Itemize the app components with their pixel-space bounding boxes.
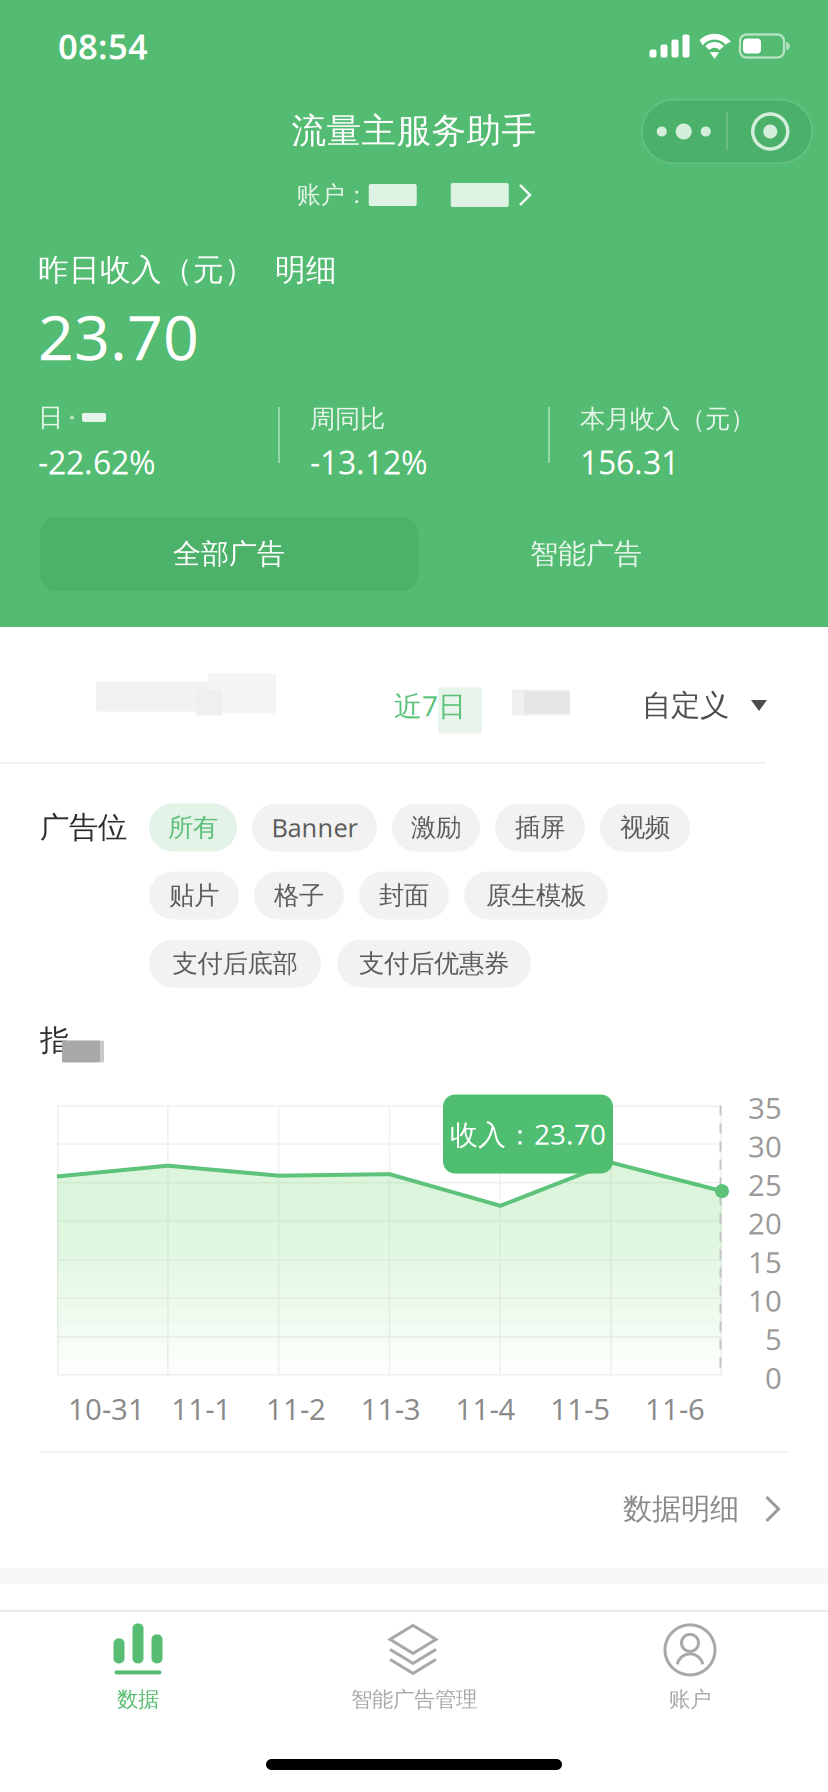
staticText: -22.62%	[38, 441, 156, 483]
button[interactable]: Banner	[252, 803, 377, 851]
staticText: 11-3	[361, 1389, 421, 1428]
staticText: 数据	[117, 1686, 159, 1713]
staticText: 数据明细	[623, 1491, 739, 1527]
staticText: Banner	[271, 811, 357, 844]
staticText: 35	[748, 1088, 782, 1127]
button[interactable]: 全部广告	[40, 517, 418, 591]
button[interactable]: 自定义	[642, 683, 767, 727]
button[interactable]: 数据	[0, 1612, 276, 1724]
staticText: 视频	[620, 812, 670, 843]
staticText: 本月收入（元）	[580, 403, 755, 434]
button[interactable]: 贴片	[149, 871, 239, 919]
staticText: 支付后优惠券	[359, 948, 509, 979]
button[interactable]: 数据明细	[0, 1453, 828, 1565]
button[interactable]: 智能广告管理	[276, 1612, 552, 1724]
button[interactable]: 所有	[149, 803, 237, 851]
staticText: 自定义	[642, 687, 729, 723]
button[interactable]: 智能广告	[418, 517, 754, 591]
staticText: 15	[748, 1242, 782, 1281]
staticText: 收入：23.70	[450, 1115, 606, 1153]
staticText: 11-1	[171, 1389, 231, 1428]
button[interactable]: 插屏	[495, 803, 585, 851]
staticText: 智能广告管理	[351, 1686, 477, 1713]
staticText: 11-4	[455, 1389, 515, 1428]
staticText: 智能广告	[530, 537, 642, 571]
button[interactable]: 原生模板	[464, 871, 608, 919]
staticText: 所有	[168, 812, 218, 843]
staticText: 08:54	[58, 23, 148, 69]
button[interactable]: More options	[641, 100, 726, 163]
button[interactable]: Close mini program	[728, 100, 813, 163]
staticText: 10-31	[68, 1389, 145, 1428]
staticText: 10	[748, 1281, 782, 1320]
staticText: 支付后底部	[172, 948, 297, 979]
button[interactable]: 支付后优惠券	[337, 939, 531, 987]
staticText: 11-6	[645, 1389, 705, 1428]
staticText: 20	[748, 1204, 782, 1243]
staticText: 贴片	[169, 880, 219, 911]
staticText: -13.12%	[310, 441, 428, 483]
button[interactable]: 近7日	[394, 683, 466, 727]
staticText: 原生模板	[486, 880, 586, 911]
button[interactable]: 激励	[392, 803, 480, 851]
staticText: 日	[38, 402, 63, 433]
staticText: 30	[748, 1127, 782, 1166]
staticText: 账户：	[297, 180, 369, 210]
staticText: 全部广告	[173, 537, 285, 571]
staticText: 周同比	[310, 403, 385, 434]
button[interactable]: 封面	[359, 871, 449, 919]
button[interactable]: 支付后底部	[149, 939, 321, 987]
staticText: 11-5	[550, 1389, 610, 1428]
button[interactable]: 格子	[254, 871, 344, 919]
staticText: 明细	[275, 251, 337, 289]
staticText: 格子	[274, 880, 324, 911]
staticText: 156.31	[580, 441, 679, 483]
staticText: 近7日	[394, 687, 466, 724]
button[interactable]: 账户	[552, 1612, 828, 1724]
staticText: 流量主服务助手	[291, 110, 536, 152]
staticText: 昨日收入（元）	[38, 251, 255, 289]
staticText: 5	[765, 1319, 782, 1358]
staticText: 插屏	[515, 812, 565, 843]
button[interactable]: 视频	[600, 803, 690, 851]
staticText: 0	[765, 1358, 782, 1397]
staticText: 23.70	[38, 294, 199, 378]
staticText: 指	[40, 1022, 69, 1058]
staticText: 广告位	[40, 809, 127, 845]
staticText: 11-2	[266, 1389, 326, 1428]
staticText: 账户	[669, 1686, 711, 1713]
staticText: 激励	[411, 812, 461, 843]
staticText: 封面	[379, 880, 429, 911]
staticText: 25	[748, 1165, 782, 1204]
